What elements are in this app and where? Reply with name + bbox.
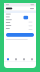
button[interactable]: Tab 2: [12, 57, 20, 61]
button[interactable]: Tab 1: [4, 57, 12, 61]
button[interactable]: Tab 3: [20, 57, 28, 61]
button[interactable]: [6, 33, 34, 37]
button[interactable]: Tab 4: [28, 57, 36, 61]
